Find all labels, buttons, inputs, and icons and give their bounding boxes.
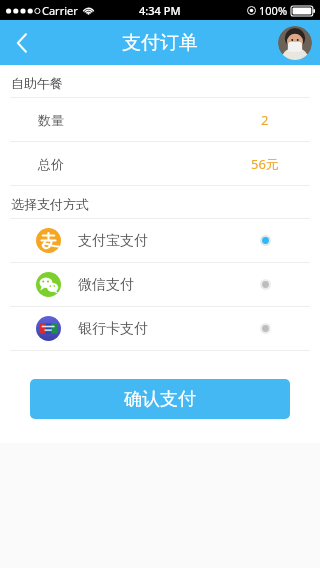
staticText: 微信支付 bbox=[78, 276, 134, 294]
staticText: 支付宝支付 bbox=[78, 232, 148, 250]
button[interactable]: 支付宝支付 bbox=[0, 219, 320, 262]
button[interactable]: 总价 bbox=[0, 142, 320, 185]
staticText: 100% bbox=[259, 3, 288, 18]
staticText: 4:34 PM bbox=[139, 3, 181, 18]
staticText: 确认支付 bbox=[124, 388, 196, 411]
staticText: 总价 bbox=[38, 156, 64, 172]
staticText: 2 bbox=[261, 111, 269, 129]
staticText: 56元 bbox=[251, 155, 279, 173]
button[interactable]: 确认支付 bbox=[30, 379, 290, 419]
staticText: 选择支付方式 bbox=[11, 196, 89, 212]
button[interactable]: 银行卡支付 bbox=[0, 307, 320, 350]
staticText: Carrier bbox=[42, 3, 78, 18]
staticText: 自助午餐 bbox=[11, 75, 63, 91]
staticText: 数量 bbox=[38, 112, 64, 128]
staticText: 银行卡支付 bbox=[78, 320, 148, 338]
button[interactable]: 数量 bbox=[0, 98, 320, 141]
staticText: 支付订单 bbox=[122, 31, 198, 55]
button[interactable]: Profile bbox=[278, 26, 312, 60]
button[interactable]: Back bbox=[0, 21, 44, 65]
button[interactable]: 微信支付 bbox=[0, 263, 320, 306]
